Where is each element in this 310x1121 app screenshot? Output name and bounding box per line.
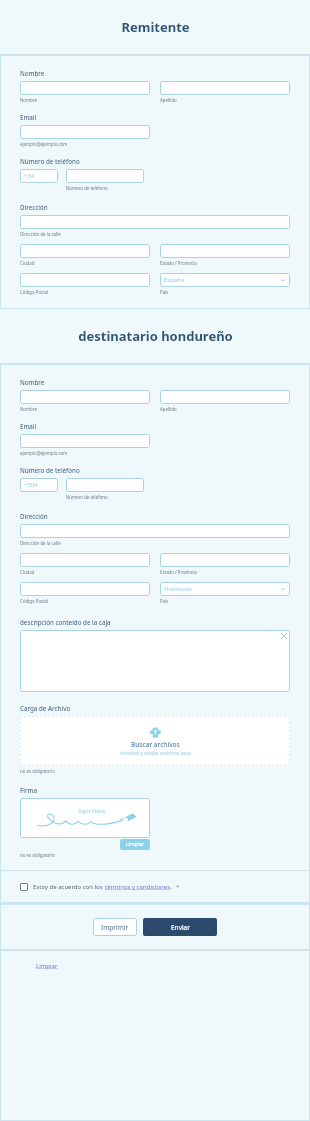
staticText: Estado / Provincia (160, 569, 197, 575)
button[interactable] (20, 524, 290, 538)
staticText: * (176, 883, 180, 891)
staticText: Ciudad (20, 260, 35, 266)
button[interactable]: España (160, 273, 290, 287)
button[interactable] (20, 244, 150, 258)
staticText: Código Postal (20, 598, 49, 604)
button[interactable] (160, 390, 290, 404)
button[interactable]: Enviar (143, 918, 217, 936)
button[interactable]: Firma (20, 798, 150, 838)
staticText: Email (20, 422, 37, 430)
staticText: Dirección de la calle (20, 540, 61, 546)
staticText: destinatario hondureño (78, 327, 233, 345)
staticText: +504 (24, 481, 38, 489)
button[interactable] (160, 81, 290, 95)
button[interactable] (160, 553, 290, 567)
staticText: Número de teléfono (66, 494, 108, 500)
staticText: País (160, 598, 169, 604)
staticText: Estado / Provincia (160, 260, 197, 266)
button[interactable] (66, 169, 144, 183)
staticText: Arrastre y suelte archivos aquí (120, 750, 191, 757)
button[interactable] (20, 434, 150, 448)
staticText: Dirección (20, 203, 48, 211)
staticText: Apellido (160, 97, 177, 103)
staticText: descripción conteido de la caja (20, 618, 111, 626)
button[interactable] (20, 81, 150, 95)
staticText: Email (20, 113, 37, 121)
staticText: Buscar archivos (131, 740, 180, 749)
staticText: Remitente (121, 18, 190, 36)
button[interactable] (20, 215, 290, 229)
button[interactable] (20, 582, 150, 596)
staticText: Limpiar (36, 962, 58, 970)
button[interactable]: +504 (20, 478, 58, 492)
staticText: Número de teléfono (66, 185, 108, 191)
staticText: términos y condiciones (105, 883, 171, 891)
staticText: Carga de Archivo (20, 704, 71, 712)
button[interactable] (160, 244, 290, 258)
staticText: Dirección (20, 512, 48, 520)
staticText: Nombre (20, 406, 38, 412)
staticText: Estoy de acuerdo con los (33, 883, 105, 891)
staticText: no es obligatorio (20, 768, 55, 774)
button[interactable]: +34 (20, 169, 58, 183)
staticText: Nombre (20, 97, 38, 103)
staticText: Número de teléfono (20, 157, 80, 165)
staticText: Nombre (20, 69, 45, 77)
staticText: Enviar (171, 923, 190, 932)
button[interactable]: Buscar archivos (20, 716, 290, 766)
staticText: Número de teléfono (20, 466, 80, 474)
button[interactable] (20, 553, 150, 567)
button[interactable]: Honduras (160, 582, 290, 596)
button[interactable] (20, 125, 150, 139)
staticText: Nombre (20, 378, 45, 386)
button[interactable] (20, 390, 150, 404)
staticText: Código Postal (20, 289, 49, 295)
staticText: ejemplo@ejemplo.com (20, 450, 68, 456)
staticText: Imprimir (101, 923, 129, 932)
staticText: Apellido (160, 406, 177, 412)
button[interactable]: Imprimir (93, 918, 137, 936)
staticText: ejemplo@ejemplo.com (20, 141, 68, 147)
button[interactable] (20, 273, 150, 287)
button[interactable] (20, 630, 290, 692)
staticText: +34 (24, 172, 35, 180)
button[interactable]: Estoy de acuerdo con los (20, 883, 290, 891)
staticText: España (164, 276, 185, 284)
button[interactable] (66, 478, 144, 492)
staticText: . (171, 883, 173, 891)
button[interactable]: Limpiar (36, 962, 58, 970)
staticText: Dirección de la calle (20, 231, 61, 237)
staticText: Firma (20, 786, 37, 794)
staticText: Limpiar (126, 841, 144, 848)
staticText: Honduras (164, 585, 192, 593)
button[interactable]: Limpiar (120, 839, 150, 850)
staticText: no es obligatorio (20, 852, 55, 858)
staticText: Ciudad (20, 569, 35, 575)
staticText: País (160, 289, 169, 295)
staticText: Sign Here (78, 807, 106, 815)
